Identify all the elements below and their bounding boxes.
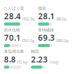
staticText: /150g [49,59,58,65]
staticText: 炭水化物 [4,27,20,32]
staticText: 2.23 [31,54,48,65]
staticText: 28.4 [4,11,21,21]
staticText: 食塩相当量 [4,49,24,54]
staticText: 脂質 [38,6,46,11]
staticText: 70.1 [4,32,21,43]
staticText: 食物繊維 [38,27,54,32]
staticText: /251.2g [22,38,34,43]
staticText: 8.8 [4,54,16,65]
staticText: 糖質 [31,49,39,54]
staticText: /282.2g [56,38,68,43]
staticText: たんぱく質 [4,6,24,11]
staticText: 28.1 [38,11,55,21]
staticText: /88.0g [56,16,66,21]
staticText: 69.3 [38,32,55,43]
staticText: /102.9g [22,16,34,21]
staticText: /15 kg [17,59,27,65]
